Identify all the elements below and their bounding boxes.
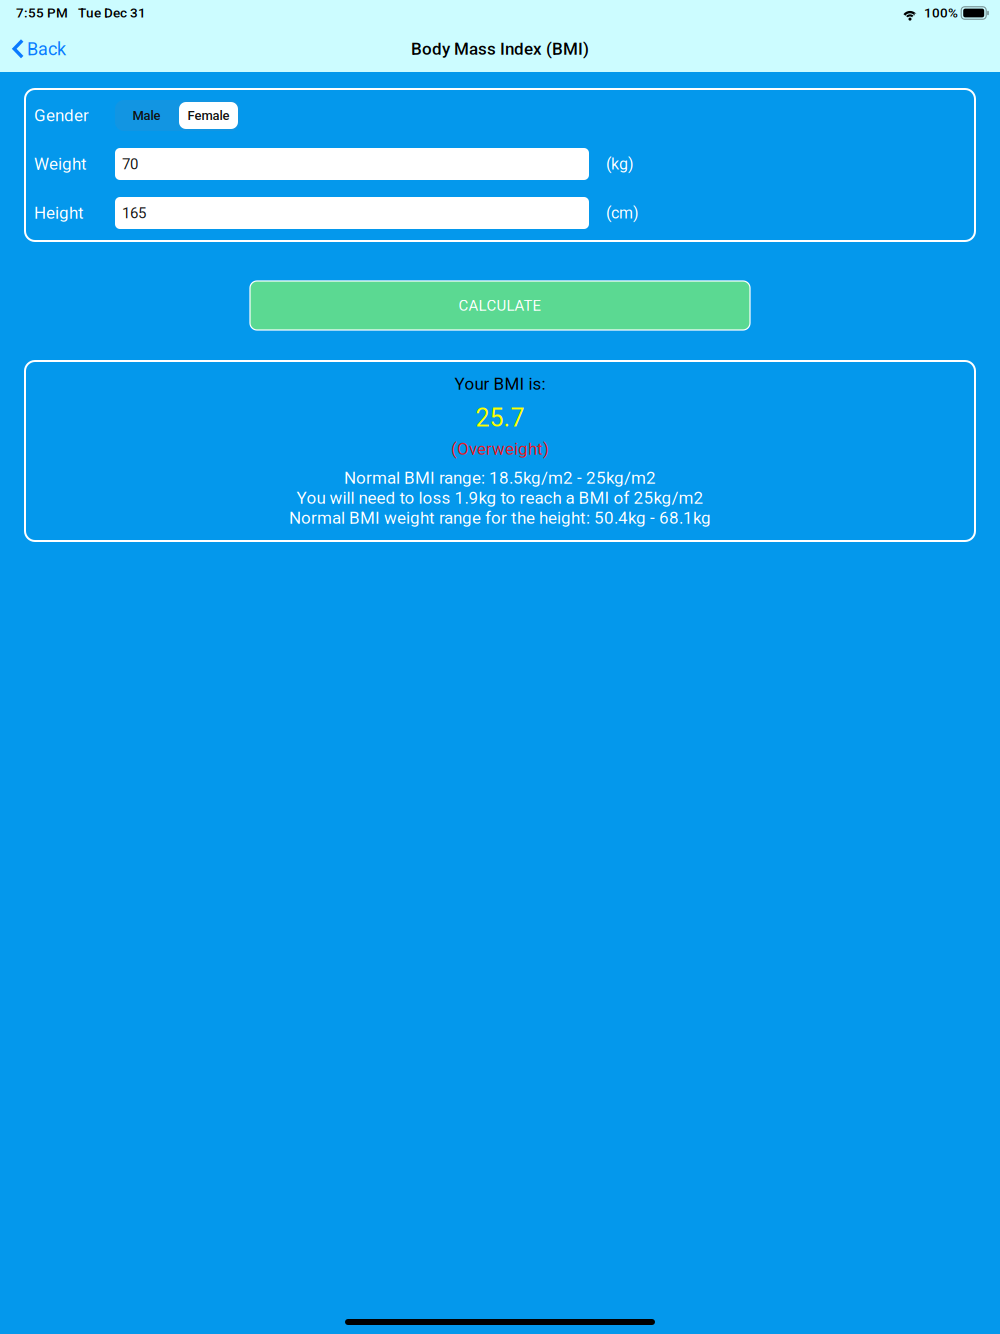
staticText: Weight (34, 154, 87, 174)
button[interactable]: Male (117, 102, 176, 129)
staticText: Male (132, 108, 160, 123)
staticText: Your BMI is: (454, 374, 545, 394)
button[interactable]: 165 (115, 197, 589, 229)
button[interactable]: CALCULATE (250, 281, 750, 330)
staticText: 25.7 (475, 403, 524, 433)
staticText: Back (27, 38, 66, 60)
staticText: Female (187, 108, 229, 123)
staticText: (Overweight) (451, 439, 549, 459)
staticText: (cm) (606, 204, 639, 222)
staticText: Height (34, 203, 84, 223)
staticText: Body Mass Index (BMI) (411, 39, 589, 59)
button[interactable]: 70 (115, 148, 589, 180)
staticText: Normal BMI range: 18.5kg/m2 - 25kg/m2 (344, 468, 656, 488)
staticText: 7:55 PM (16, 5, 68, 21)
staticText: CALCULATE (458, 297, 541, 314)
staticText: 165 (122, 204, 146, 222)
button[interactable]: Back (0, 27, 78, 71)
staticText: You will need to loss 1.9kg to reach a B… (296, 488, 703, 508)
staticText: Normal BMI weight range for the height: … (289, 508, 711, 528)
staticText: 100% (924, 5, 958, 21)
staticText: (kg) (606, 155, 634, 173)
staticText: 70 (122, 155, 138, 173)
button[interactable]: Female (179, 102, 238, 129)
staticText: Gender (34, 105, 89, 125)
staticText: Tue Dec 31 (78, 5, 146, 21)
